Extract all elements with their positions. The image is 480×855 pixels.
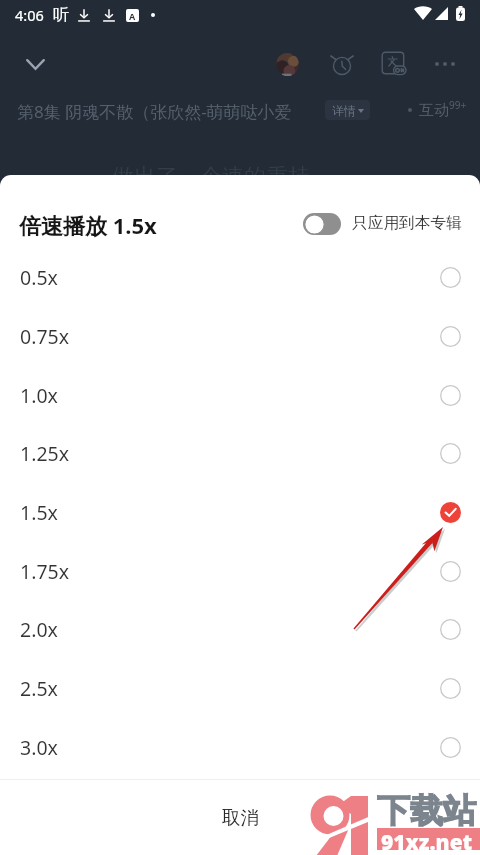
staticText: 3.0x <box>20 734 58 761</box>
staticText: 取消 <box>222 806 259 829</box>
button[interactable]: 3.0x <box>0 718 480 777</box>
button[interactable]: 互动 <box>408 98 467 122</box>
button[interactable]: 第8集 阴魂不散（张欣然-萌萌哒小爱 <box>17 99 320 123</box>
staticText: 详情 <box>332 103 356 118</box>
staticText: 99+ <box>449 98 467 112</box>
staticText: 0.75x <box>20 323 70 350</box>
staticText: 1.25x <box>20 440 70 467</box>
button[interactable]: 详情 <box>325 100 370 120</box>
staticText: 1.5x <box>20 499 58 526</box>
staticText: 互动 <box>419 101 449 120</box>
staticText: 听 <box>53 5 69 25</box>
staticText: 下载站 <box>377 790 476 832</box>
staticText: 1.75x <box>20 558 70 585</box>
button[interactable]: 取消 <box>0 780 480 855</box>
button[interactable]: 0.5x <box>0 248 480 307</box>
staticText: 4:06 <box>15 5 44 25</box>
button[interactable]: 2.5x <box>0 659 480 718</box>
staticText: 只应用到本专辑 <box>352 213 462 233</box>
button[interactable]: Apply to this album only <box>303 213 341 235</box>
staticText: 1.0x <box>20 382 58 409</box>
button[interactable]: 1.75x <box>0 542 480 601</box>
button[interactable]: 1.5x <box>0 483 480 542</box>
staticText: 倍速播放 1.5x <box>19 210 157 240</box>
button[interactable]: 2.0x <box>0 600 480 659</box>
button[interactable]: Sleep timer <box>325 47 359 81</box>
staticText: A <box>129 10 136 22</box>
button[interactable]: 1.0x <box>0 366 480 425</box>
staticText: 2.0x <box>20 616 58 643</box>
button[interactable]: Host profile <box>270 47 304 81</box>
staticText: 91xz.net <box>381 828 473 855</box>
button[interactable]: Translate <box>376 46 410 80</box>
button[interactable]: More options <box>428 47 462 81</box>
button[interactable]: 0.75x <box>0 307 480 366</box>
staticText: 0.5x <box>20 264 58 291</box>
staticText: 2.5x <box>20 675 58 702</box>
staticText: 第8集 阴魂不散（张欣然-萌萌哒小爱 <box>17 100 292 123</box>
button[interactable]: 1.25x <box>0 424 480 483</box>
button[interactable]: Collapse player <box>17 46 53 82</box>
staticText: 做出了一个速的秉持 <box>112 163 310 191</box>
